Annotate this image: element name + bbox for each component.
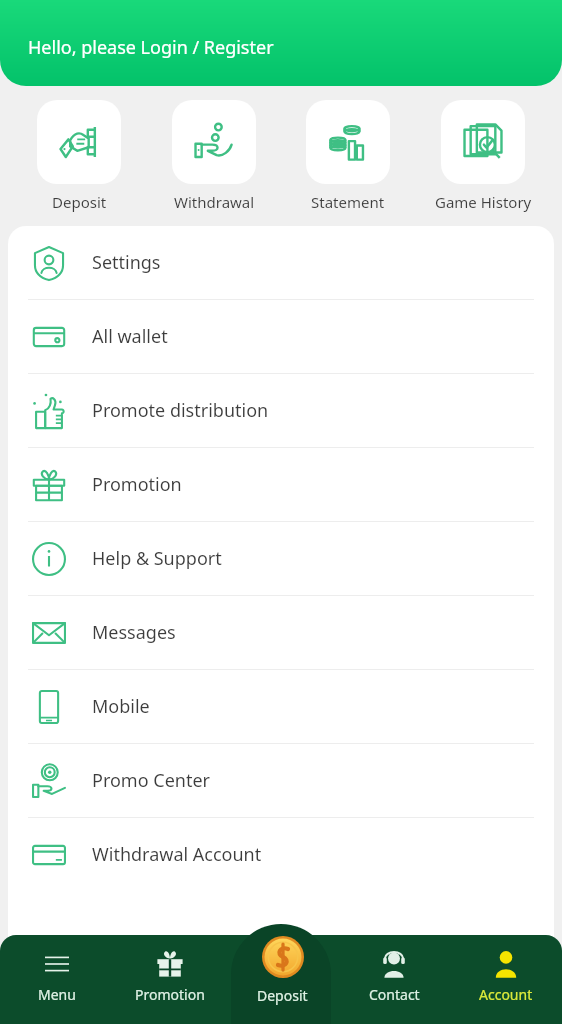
staticText: Deposit [257,986,308,1005]
staticText: All wallet [92,324,168,349]
staticText: Account [479,985,533,1004]
button[interactable]: Account [450,935,562,1024]
staticText: Promote distribution [92,398,269,423]
staticText: Withdrawal Account [92,842,262,867]
staticText: Contact [369,985,420,1004]
staticText: Game History [435,192,532,212]
button[interactable]: All wallet [8,300,554,373]
staticText: Mobile [92,694,150,719]
staticText: Deposit [52,192,107,212]
button[interactable]: Mobile [8,670,554,743]
button[interactable]: Contact [338,935,450,1024]
staticText: Statement [311,192,385,212]
button[interactable]: Promote distribution [8,374,554,447]
staticText: Promotion [92,472,182,497]
button[interactable]: Hello, please Login / Register [28,35,274,60]
button[interactable]: Deposit [226,924,338,1024]
staticText: Promo Center [92,768,210,793]
button[interactable]: Deposit [16,100,142,212]
staticText: Settings [92,250,161,275]
staticText: Menu [38,985,76,1004]
button[interactable]: Statement [285,100,411,212]
button[interactable]: Menu [0,935,113,1024]
button[interactable]: Withdrawal Account [8,818,554,891]
button[interactable]: Promotion [8,448,554,521]
staticText: Promotion [135,985,205,1004]
staticText: Help & Support [92,546,222,571]
button[interactable]: Game History [420,100,546,212]
button[interactable]: Help & Support [8,522,554,595]
staticText: Messages [92,620,176,645]
button[interactable]: Promotion [113,935,226,1024]
button[interactable]: Messages [8,596,554,669]
button[interactable]: Settings [8,226,554,299]
button[interactable]: Promo Center [8,744,554,817]
staticText: Withdrawal [174,192,255,212]
button[interactable]: Withdrawal [151,100,277,212]
